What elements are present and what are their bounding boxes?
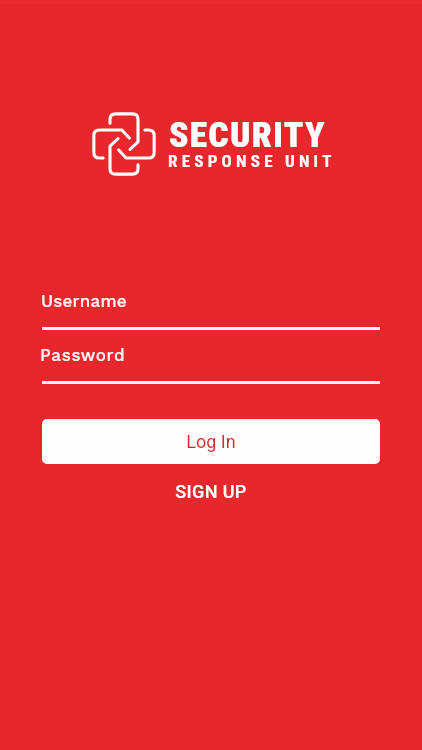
staticText: SIGN UP [175,481,247,502]
staticText: Username [41,291,127,311]
button[interactable]: SIGN UP [42,472,380,510]
button[interactable]: Password [42,342,380,386]
staticText: RESPONSE UNIT [168,151,336,171]
staticText: Password [40,345,126,365]
button[interactable]: Log In [42,419,380,464]
button[interactable]: Username [42,288,380,332]
other: Security Response Unit logo [91,111,157,177]
staticText: SECURITY [169,114,326,155]
staticText: Log In [186,431,236,452]
